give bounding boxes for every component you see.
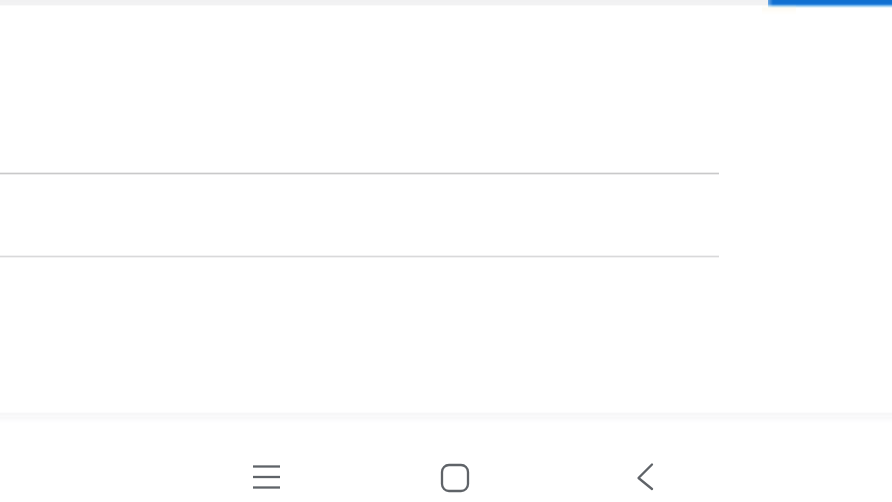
button[interactable]: Home bbox=[424, 447, 484, 502]
button[interactable]: Back bbox=[608, 447, 668, 502]
button[interactable]: Recent apps bbox=[236, 447, 296, 502]
